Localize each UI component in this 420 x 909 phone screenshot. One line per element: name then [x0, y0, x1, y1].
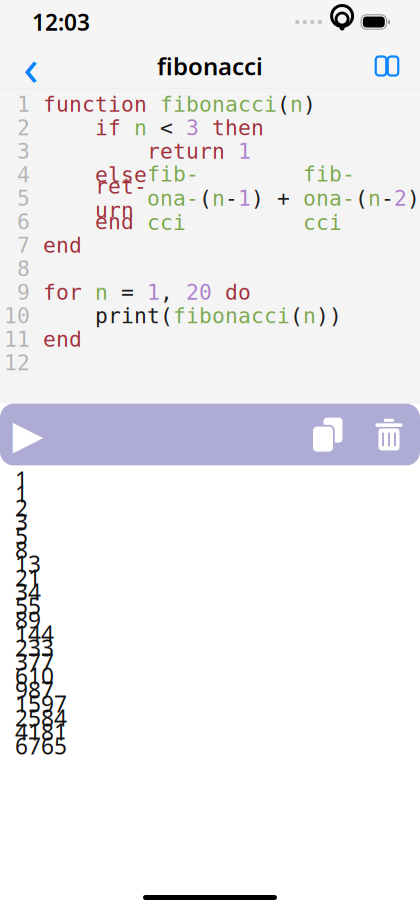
staticText: ‹: [23, 32, 39, 100]
staticText: 2: [394, 186, 407, 210]
staticText: n: [290, 92, 303, 116]
staticText: 20: [186, 280, 225, 304]
staticText: -: [225, 186, 238, 210]
staticText: 144: [15, 618, 54, 649]
staticText: fibonacci: [157, 50, 263, 82]
staticText: ): [407, 186, 420, 210]
staticText: 89: [15, 604, 41, 635]
button[interactable]: Clear output: [358, 404, 420, 466]
staticText: end: [43, 233, 82, 257]
staticText: 8: [15, 534, 28, 565]
staticText: fibonacci: [303, 162, 355, 235]
staticText: 1: [147, 280, 160, 304]
staticText: n: [212, 186, 225, 210]
staticText: (: [355, 186, 368, 210]
staticText: end: [43, 327, 82, 351]
staticText: 4181: [15, 716, 67, 747]
staticText: ▶: [12, 412, 43, 457]
staticText: return: [95, 174, 147, 222]
staticText: -: [381, 186, 394, 210]
staticText: 6: [17, 210, 30, 234]
staticText: =: [121, 280, 147, 304]
staticText: print: [95, 304, 160, 328]
staticText: function: [43, 92, 160, 116]
staticText: 3: [15, 506, 28, 537]
staticText: 610: [15, 660, 54, 691]
button[interactable]: Documentation: [362, 44, 412, 88]
staticText: 1597: [15, 688, 67, 719]
staticText: 11: [4, 327, 30, 351]
staticText: (: [290, 304, 303, 328]
staticText: 233: [15, 632, 54, 663]
staticText: 2584: [15, 702, 67, 733]
staticText: 377: [15, 646, 54, 677]
staticText: 3: [186, 116, 212, 140]
staticText: 12: [4, 351, 30, 375]
button[interactable]: Back: [8, 44, 54, 88]
staticText: 13: [15, 548, 41, 579]
staticText: end: [95, 210, 134, 234]
staticText: 1: [15, 478, 28, 509]
staticText: 6765: [15, 730, 67, 761]
staticText: fibonacci: [173, 304, 290, 328]
staticText: n: [134, 116, 160, 140]
staticText: 4: [17, 163, 30, 187]
staticText: 55: [15, 590, 41, 621]
staticText: 21: [15, 562, 41, 593]
staticText: (: [199, 186, 212, 210]
staticText: 5: [15, 520, 28, 551]
button[interactable]: Copy output: [296, 404, 358, 466]
staticText: fibonacci: [160, 92, 277, 116]
staticText: ,: [160, 280, 186, 304]
staticText: else: [95, 163, 147, 187]
staticText: return: [147, 139, 238, 163]
staticText: 2: [15, 492, 28, 523]
staticText: (: [277, 92, 290, 116]
staticText: for: [43, 280, 95, 304]
staticText: do: [225, 280, 251, 304]
staticText: n: [95, 280, 121, 304]
staticText: 1: [238, 139, 251, 163]
staticText: n: [368, 186, 381, 210]
staticText: 12:03: [32, 7, 90, 37]
staticText: ): [251, 186, 277, 210]
staticText: 2: [17, 116, 30, 140]
staticText: if: [95, 116, 134, 140]
staticText: n: [303, 304, 316, 328]
staticText: 1: [15, 464, 28, 495]
staticText: 1: [17, 92, 30, 116]
staticText: then: [212, 116, 264, 140]
staticText: ): [303, 92, 316, 116]
staticText: <: [160, 116, 186, 140]
staticText: +: [277, 186, 303, 210]
staticText: 7: [17, 233, 30, 257]
staticText: 1: [238, 186, 251, 210]
staticText: 987: [15, 674, 54, 705]
staticText: 34: [15, 576, 41, 607]
staticText: 9: [17, 280, 30, 304]
staticText: )): [316, 304, 342, 328]
staticText: fibonacci: [147, 162, 199, 235]
staticText: 3: [17, 139, 30, 163]
button[interactable]: Run: [0, 404, 56, 466]
staticText: 10: [4, 304, 30, 328]
staticText: 5: [17, 186, 30, 210]
